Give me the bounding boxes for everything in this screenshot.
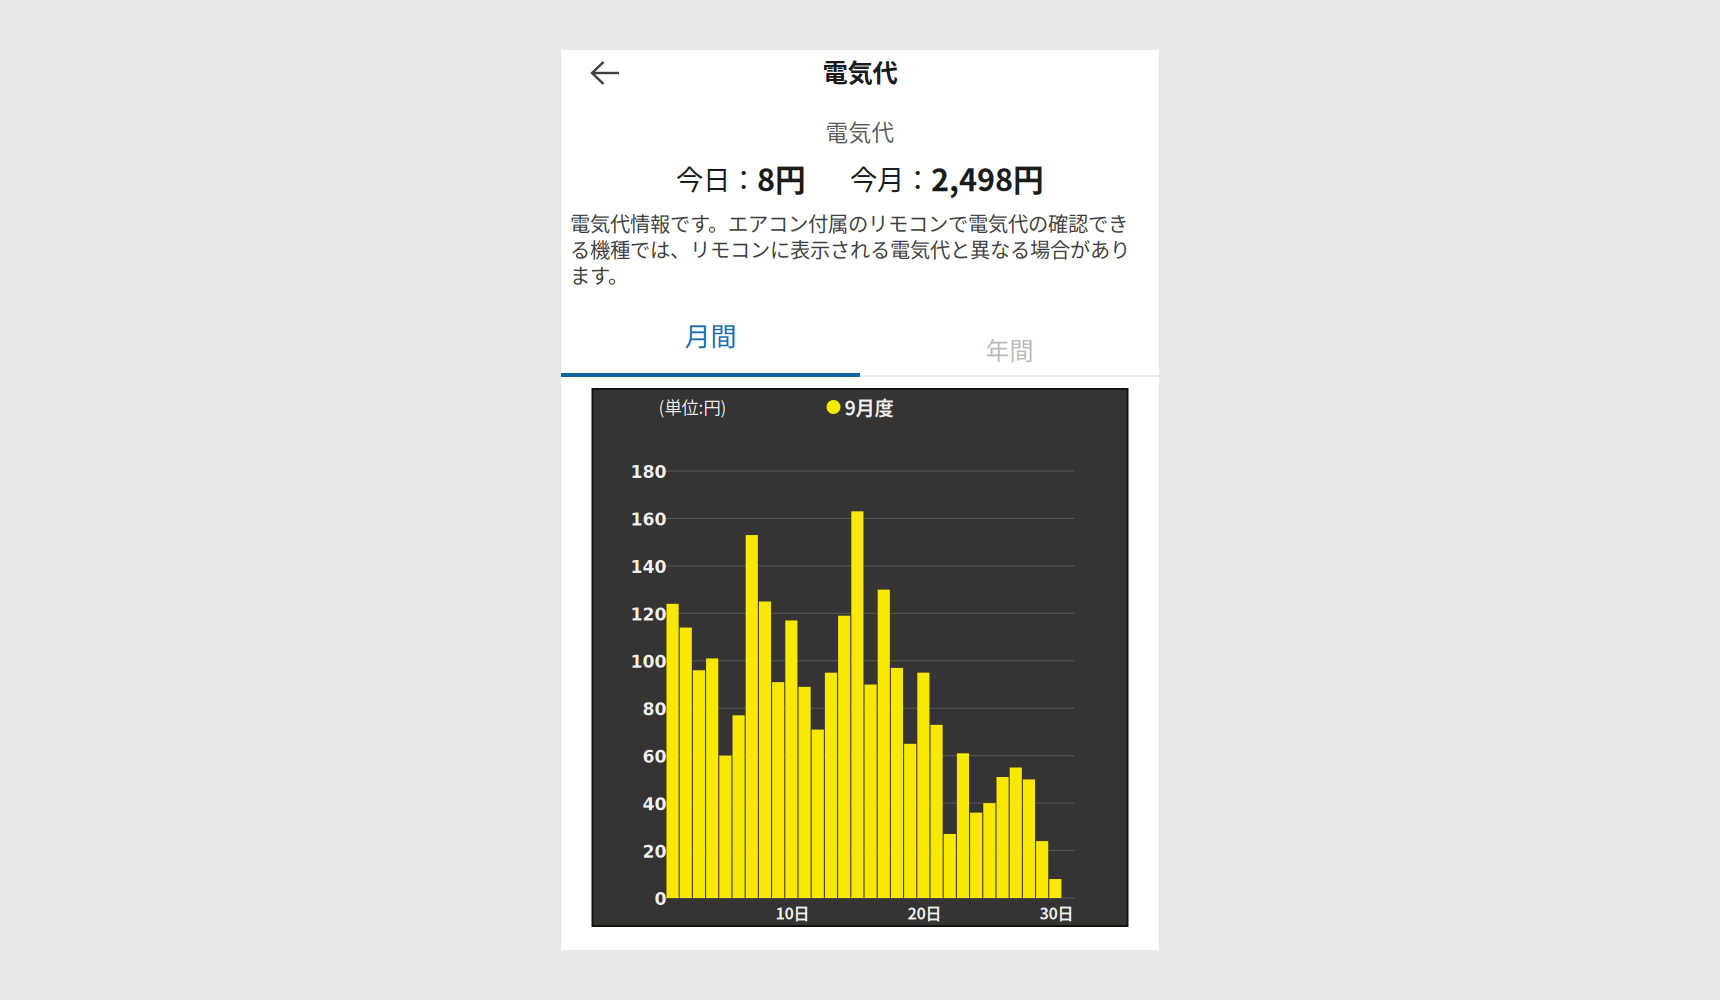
staticText: 180 [630, 462, 666, 482]
staticText: ます。 [570, 260, 628, 290]
button[interactable]: 戻る [561, 52, 621, 98]
staticText: (単位:円) [658, 394, 726, 419]
staticText: 20 [642, 842, 666, 862]
button[interactable]: 年間 [860, 299, 1159, 373]
staticText: 年間 [985, 332, 1033, 366]
button[interactable]: 月間 [561, 299, 860, 373]
staticText: 電気代情報です。エアコン付属のリモコンで電気代の確認でき [570, 208, 1128, 238]
staticText: る機種では、リモコンに表示される電気代と異なる場合があり [570, 234, 1130, 264]
staticText: 40 [642, 794, 666, 814]
staticText: 月間 [684, 316, 736, 354]
staticText: 140 [630, 557, 666, 577]
staticText: 10日 [776, 901, 810, 924]
staticText: 今月： [850, 158, 931, 198]
staticText: 9月度 [844, 393, 893, 421]
staticText: 8円 [757, 156, 806, 200]
staticText: 2,498円 [931, 156, 1044, 200]
staticText: 電気代 [822, 53, 897, 89]
staticText: 今日： [676, 158, 757, 198]
staticText: 100 [630, 652, 666, 672]
staticText: 30日 [1040, 901, 1074, 924]
staticText: 電気代 [825, 115, 894, 147]
staticText: 120 [630, 604, 666, 624]
staticText: 0 [654, 889, 666, 909]
staticText: 60 [642, 747, 666, 767]
staticText: 80 [642, 699, 666, 719]
staticText: 20日 [908, 901, 942, 924]
staticText: 160 [630, 509, 666, 530]
